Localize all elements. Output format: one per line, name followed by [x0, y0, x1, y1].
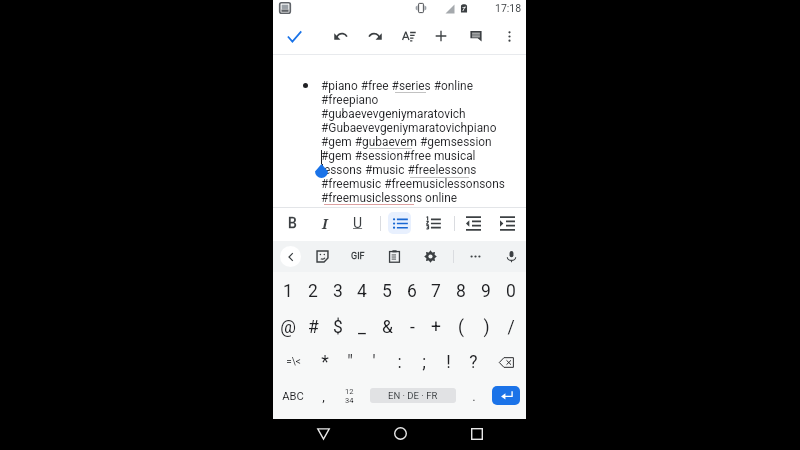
- button[interactable]: Bulleted list: [389, 212, 411, 234]
- button[interactable]: More: [464, 245, 487, 268]
- staticText: 4: [357, 281, 367, 302]
- staticText: 34: [345, 396, 354, 405]
- button[interactable]: ?: [461, 350, 485, 374]
- staticText: 12: [345, 387, 354, 396]
- staticText: #gem #gubaevem #gemsession: [321, 135, 492, 149]
- staticText: -: [410, 317, 415, 338]
- staticText: ,: [322, 389, 325, 404]
- staticText: *: [321, 352, 329, 373]
- staticText: GIF: [351, 251, 365, 262]
- button[interactable]: U: [347, 212, 369, 234]
- button[interactable]: Done: [281, 23, 307, 49]
- staticText: #freepiano: [321, 93, 379, 107]
- button[interactable]: 5: [375, 279, 399, 303]
- staticText: #: [308, 317, 319, 338]
- button[interactable]: B: [281, 212, 303, 234]
- staticText: #freemusiclessons online: [321, 191, 458, 205]
- button[interactable]: 6: [400, 279, 424, 303]
- staticText: @: [280, 317, 296, 338]
- button[interactable]: 7: [424, 279, 448, 303]
- button[interactable]: (: [449, 315, 473, 339]
- staticText: EN · DE · FR: [388, 390, 438, 401]
- staticText: 9: [481, 281, 491, 302]
- button[interactable]: _: [350, 315, 374, 339]
- button[interactable]: EN · DE · FR: [370, 388, 456, 403]
- button[interactable]: Back: [280, 246, 301, 267]
- staticText: =\<: [286, 356, 301, 368]
- button[interactable]: Text formatting: [396, 23, 422, 49]
- button[interactable]: Backspace: [495, 352, 517, 372]
- staticText: #freemusic #freemusiclessonsons: [321, 177, 505, 191]
- button[interactable]: Stickers: [311, 245, 334, 268]
- button[interactable]: Add: [428, 23, 454, 49]
- button[interactable]: Undo: [328, 23, 354, 49]
- button[interactable]: Back: [310, 419, 336, 450]
- button[interactable]: Home: [387, 419, 413, 450]
- staticText: I: [322, 214, 328, 233]
- button[interactable]: GIF: [346, 245, 369, 268]
- button[interactable]: #: [301, 315, 325, 339]
- staticText: 2: [308, 281, 318, 302]
- staticText: 7: [431, 281, 441, 302]
- button[interactable]: :: [387, 350, 411, 374]
- button[interactable]: 8: [449, 279, 473, 303]
- button[interactable]: Numbers: [339, 386, 359, 406]
- staticText: _: [358, 317, 366, 338]
- staticText: ABC: [282, 390, 304, 403]
- button[interactable]: !: [436, 350, 460, 374]
- button[interactable]: Comment: [463, 23, 489, 49]
- staticText: 6: [407, 281, 417, 302]
- staticText: !: [446, 352, 451, 373]
- button[interactable]: /: [499, 315, 523, 339]
- staticText: /: [507, 317, 515, 338]
- button[interactable]: ABC: [281, 384, 305, 408]
- button[interactable]: 4: [350, 279, 374, 303]
- button[interactable]: *: [313, 350, 337, 374]
- staticText: .: [472, 389, 476, 404]
- staticText: #piano #free #series #online: [321, 79, 473, 93]
- button[interactable]: Settings: [419, 245, 442, 268]
- staticText: U: [353, 215, 363, 231]
- button[interactable]: Redo: [362, 23, 388, 49]
- button[interactable]: @: [276, 315, 300, 339]
- button[interactable]: Enter: [492, 386, 520, 405]
- button[interactable]: I: [314, 212, 336, 234]
- button[interactable]: Outdent: [462, 212, 484, 234]
- button[interactable]: 2: [301, 279, 325, 303]
- staticText: ": [347, 352, 353, 373]
- button[interactable]: More options: [496, 23, 522, 49]
- button[interactable]: ): [474, 315, 498, 339]
- staticText: 17:18: [495, 2, 522, 14]
- button[interactable]: &: [375, 315, 399, 339]
- button[interactable]: ;: [412, 350, 436, 374]
- button[interactable]: Voice input: [500, 245, 523, 268]
- staticText: 1: [283, 281, 293, 302]
- button[interactable]: =\<: [281, 350, 305, 374]
- button[interactable]: .: [462, 384, 486, 408]
- staticText: #Gubaevevgeniymaratovichpiano: [321, 121, 497, 135]
- button[interactable]: 1: [276, 279, 300, 303]
- button[interactable]: ,: [311, 384, 335, 408]
- staticText: :: [397, 352, 402, 373]
- staticText: #gubaevevgeniymaratovich: [321, 107, 466, 121]
- staticText: 0: [506, 281, 516, 302]
- button[interactable]: 0: [499, 279, 523, 303]
- staticText: ?: [469, 352, 478, 373]
- button[interactable]: 9: [474, 279, 498, 303]
- button[interactable]: Indent: [496, 212, 518, 234]
- button[interactable]: ': [362, 350, 386, 374]
- button[interactable]: $: [326, 315, 350, 339]
- button[interactable]: Clipboard: [383, 245, 406, 268]
- staticText: 5: [382, 281, 392, 302]
- button[interactable]: Bulleted list: [388, 212, 411, 234]
- staticText: lessons #music #freelessons: [321, 163, 477, 177]
- button[interactable]: +: [424, 315, 448, 339]
- staticText: #gem #session#free musical: [321, 149, 476, 163]
- button[interactable]: Numbered list: [422, 212, 444, 234]
- button[interactable]: -: [400, 315, 424, 339]
- staticText: (: [458, 317, 464, 338]
- button[interactable]: Recents: [464, 419, 490, 450]
- button[interactable]: 3: [326, 279, 350, 303]
- button[interactable]: ": [338, 350, 362, 374]
- staticText: &: [382, 317, 393, 338]
